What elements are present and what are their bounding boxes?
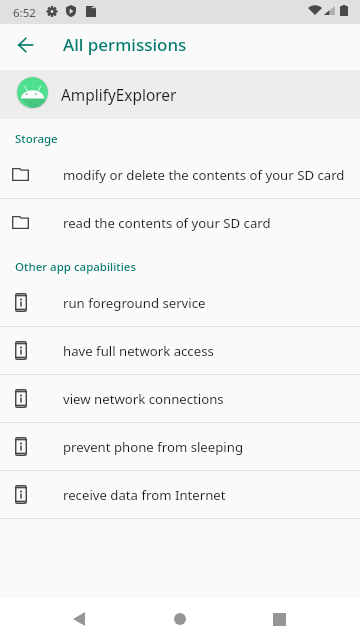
button[interactable]: receive data from Internet [0, 471, 360, 518]
button[interactable]: Home [156, 598, 204, 640]
button[interactable]: read the contents of your SD card [0, 199, 360, 247]
button[interactable]: Back [55, 598, 103, 640]
button[interactable]: Navigate up [2, 22, 48, 68]
staticText: Other app capabilities [15, 259, 136, 275]
staticText: receive data from Internet [63, 486, 226, 504]
button[interactable]: have full network access [0, 327, 360, 374]
staticText: AmplifyExplorer [61, 85, 177, 106]
button[interactable]: modify or delete the contents of your SD… [0, 151, 360, 198]
button[interactable]: AmplifyExplorer [0, 70, 360, 119]
staticText: prevent phone from sleeping [63, 438, 244, 456]
button[interactable]: run foreground service [0, 279, 360, 326]
staticText: view network connections [63, 390, 224, 408]
staticText: have full network access [63, 342, 214, 360]
staticText: modify or delete the contents of your SD… [63, 166, 345, 184]
staticText: All permissions [63, 33, 187, 56]
staticText: Storage [15, 131, 58, 147]
staticText: read the contents of your SD card [63, 214, 271, 232]
staticText: run foreground service [63, 294, 206, 312]
button[interactable]: Recent apps [255, 598, 303, 640]
staticText: 6:52 [13, 5, 36, 21]
button[interactable]: view network connections [0, 375, 360, 422]
button[interactable]: prevent phone from sleeping [0, 423, 360, 470]
